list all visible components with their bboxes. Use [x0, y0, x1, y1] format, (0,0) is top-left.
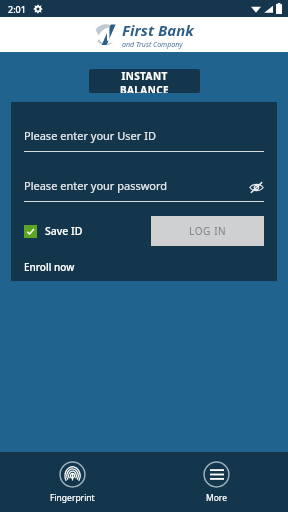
staticText: First Bank — [122, 20, 194, 40]
button[interactable]: LOG IN — [151, 216, 264, 246]
button[interactable]: Show password — [248, 179, 264, 195]
staticText: INSTANT BALANCE — [97, 69, 192, 93]
button[interactable]: Please enter your password — [24, 178, 264, 202]
button[interactable]: Save ID — [24, 224, 83, 238]
button[interactable]: Fingerprint login — [38, 457, 107, 508]
button[interactable]: Please enter your User ID — [24, 128, 264, 152]
staticText: 2:01 — [8, 3, 26, 15]
staticText: Enroll now — [24, 260, 75, 274]
staticText: Save ID — [45, 224, 83, 238]
staticText: More — [206, 492, 227, 504]
button[interactable]: INSTANT BALANCE — [89, 69, 200, 93]
button[interactable]: More options — [191, 457, 242, 508]
staticText: Please enter your password — [24, 178, 168, 193]
staticText: LOG IN — [189, 224, 227, 238]
button[interactable]: Enroll now — [24, 260, 75, 274]
staticText: Fingerprint — [50, 492, 95, 504]
staticText: and Trust Company — [122, 40, 183, 50]
staticText: Please enter your User ID — [24, 128, 156, 143]
